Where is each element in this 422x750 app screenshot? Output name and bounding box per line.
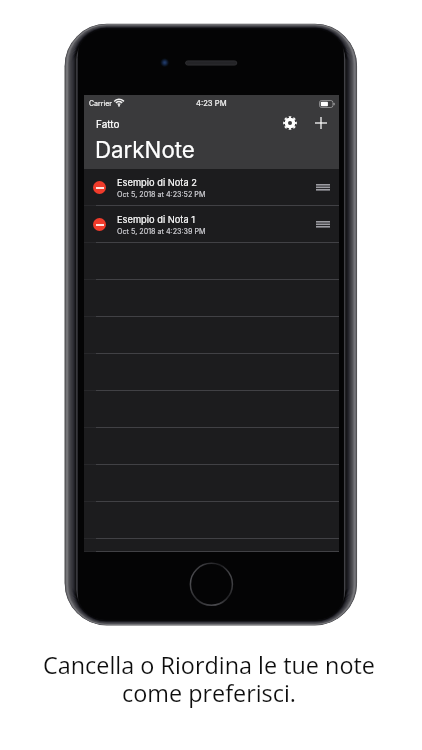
button[interactable]: Delete bbox=[93, 218, 106, 231]
staticText: 4:23 PM bbox=[196, 99, 227, 108]
button[interactable]: Delete bbox=[93, 181, 106, 194]
staticText: Esempio di Nota 2 bbox=[117, 177, 197, 188]
button[interactable]: Reorder bbox=[310, 213, 335, 235]
button[interactable]: Delete bbox=[84, 169, 339, 206]
button[interactable]: Delete bbox=[84, 206, 339, 243]
staticText: DarkNote bbox=[95, 136, 195, 163]
staticText: Fatto bbox=[96, 118, 120, 130]
staticText: Esempio di Nota 1 bbox=[117, 214, 196, 225]
button[interactable]: Reorder bbox=[310, 176, 335, 198]
staticText: Oct 5, 2018 at 4:23:52 PM bbox=[117, 190, 206, 199]
staticText: Oct 5, 2018 at 4:23:39 PM bbox=[117, 227, 206, 236]
button[interactable]: Settings bbox=[279, 112, 301, 134]
staticText: Cancella o Riordina le tue note come pre… bbox=[43, 649, 375, 709]
button[interactable]: Fatto bbox=[84, 112, 128, 135]
staticText: Carrier bbox=[89, 99, 112, 107]
button[interactable]: Add note bbox=[310, 112, 332, 134]
